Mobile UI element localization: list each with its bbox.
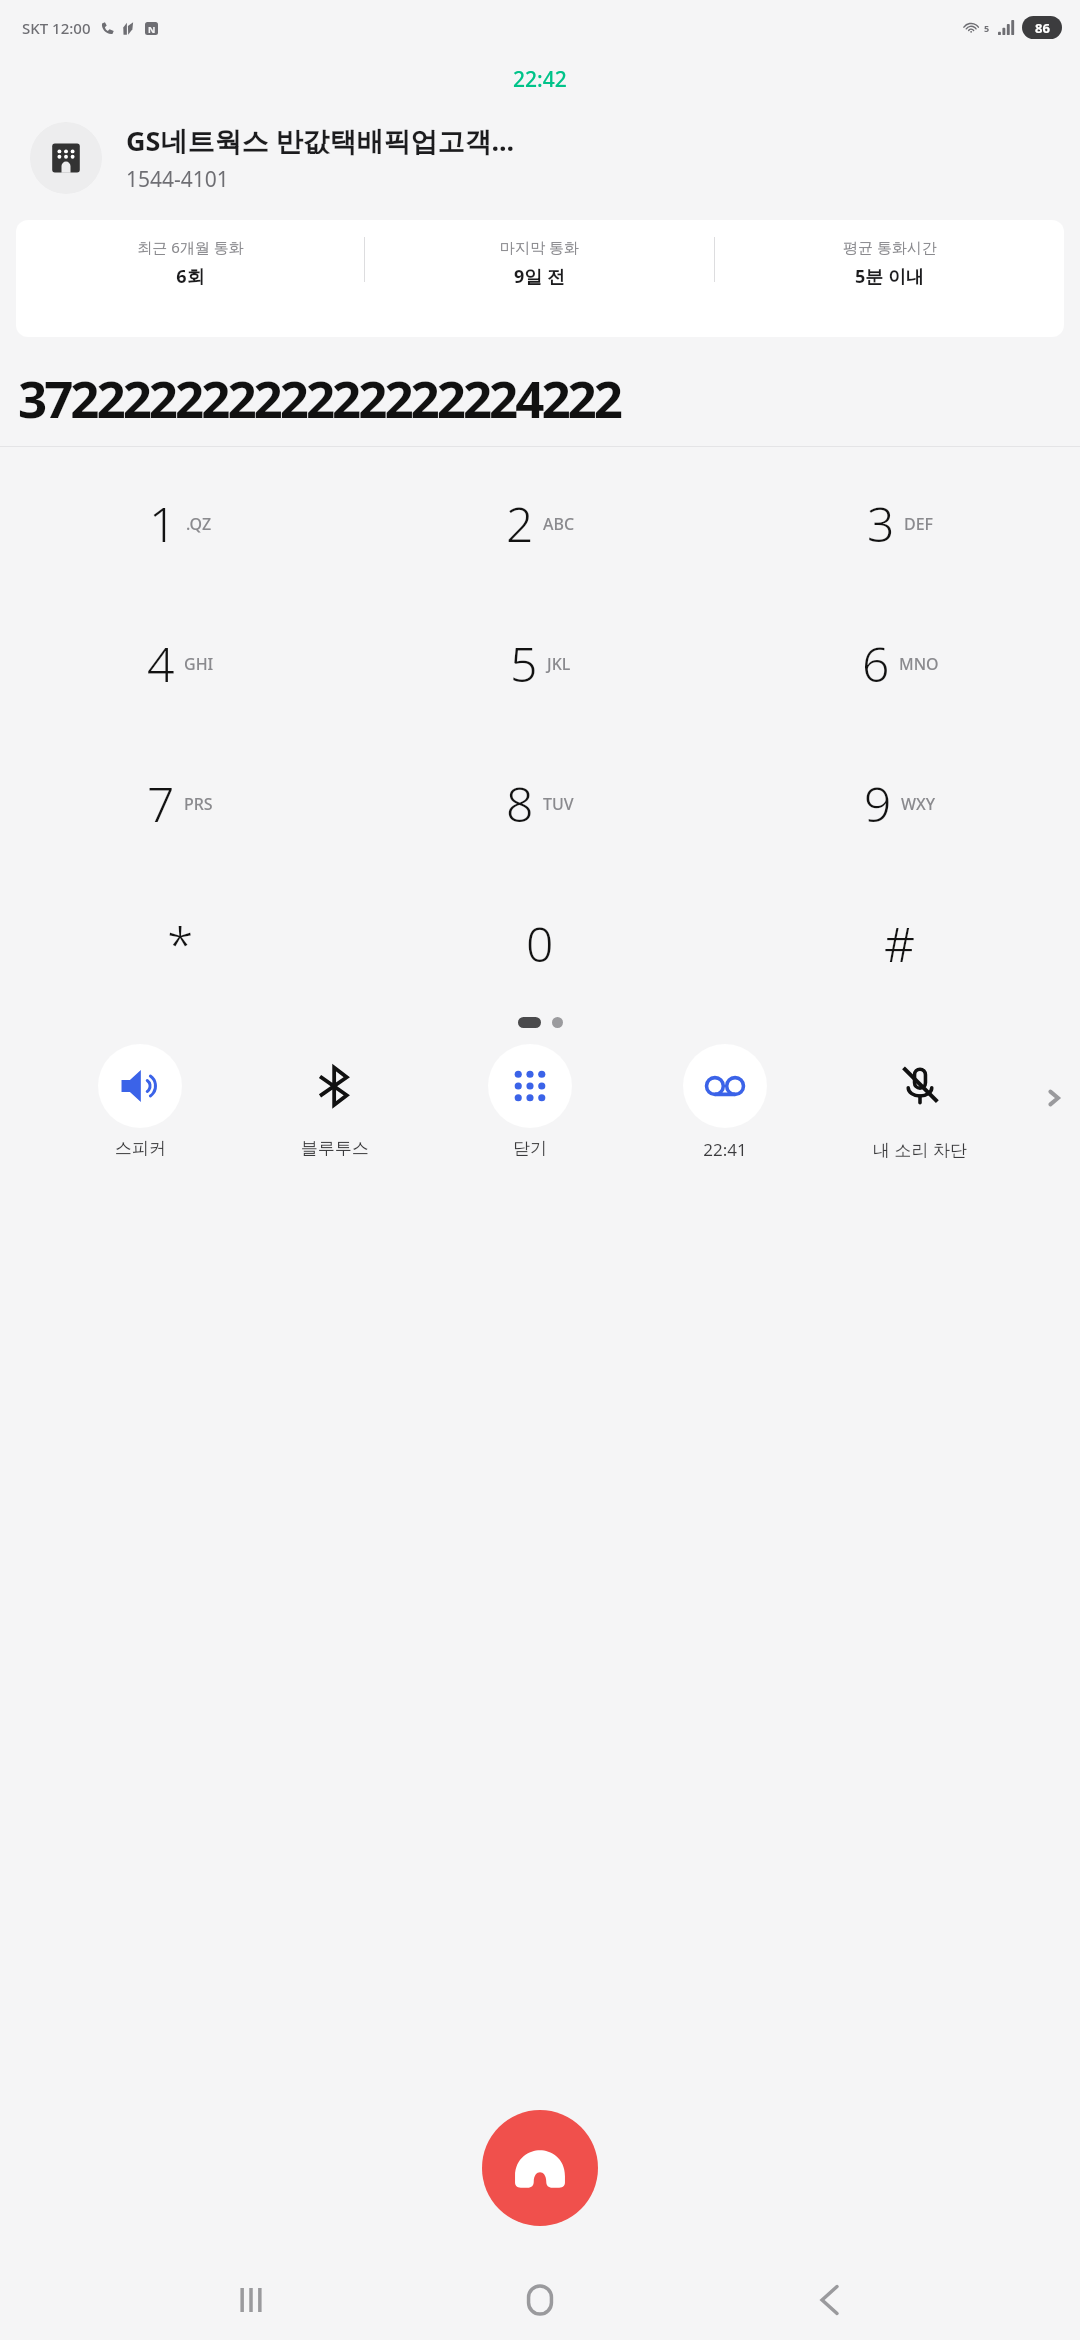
button[interactable]: 마지막 통화 [365,237,714,289]
staticText: 스피커 [115,1138,166,1159]
staticText: 2 [506,491,534,556]
staticText: DEF [904,513,934,535]
button[interactable]: Mute [855,1044,985,1161]
staticText: 3 [867,491,895,556]
other: Mute [878,1044,962,1128]
staticText: PRS [184,793,213,815]
staticText: 닫기 [513,1138,547,1159]
staticText: 내 소리 차단 [873,1138,967,1161]
button[interactable]: Voicemail [660,1044,790,1161]
staticText: 1544-4101 [126,165,229,194]
button[interactable]: More options [1034,1078,1074,1118]
button[interactable]: 4 [0,593,360,733]
staticText: 7 [147,771,175,836]
staticText: .QZ [186,513,212,535]
button[interactable]: Back [791,2261,869,2339]
staticText: 6 [862,631,890,696]
staticText: 37222222222222222224222 [18,363,620,432]
button[interactable]: 5 [360,593,720,733]
staticText: 0 [526,911,554,976]
staticText: ABC [543,513,575,535]
button[interactable]: Speaker [75,1044,205,1159]
button[interactable]: 9 [720,733,1080,873]
staticText: 마지막 통화 [500,237,579,257]
staticText: SKT 12:00 [22,18,91,38]
button[interactable]: 0 [360,873,720,1013]
other: Voicemail [683,1044,767,1128]
staticText: GHI [184,653,214,675]
button[interactable]: 1 [0,453,360,593]
staticText: 5 [510,631,538,696]
button[interactable]: 6 [720,593,1080,733]
button[interactable]: 8 [360,733,720,873]
staticText: # [884,911,916,976]
staticText: MNO [899,653,939,675]
button[interactable]: 평균 통화시간 [715,237,1064,289]
staticText: 5 [984,22,990,34]
other: Bluetooth [293,1044,377,1128]
button[interactable]: Recents [212,2261,290,2339]
staticText: * [167,911,194,976]
button[interactable]: 7 [0,733,360,873]
button[interactable]: End call [482,2110,598,2226]
staticText: 4 [147,631,175,696]
button[interactable]: 최근 6개월 통화 [16,237,364,289]
button[interactable]: * [0,873,360,1013]
button[interactable]: Bluetooth [270,1044,400,1159]
button[interactable]: # [720,873,1080,1013]
other: Close keypad [488,1044,572,1128]
staticText: 8 [506,771,534,836]
staticText: 최근 6개월 통화 [137,237,244,257]
staticText: GS네트웍스 반값택배픽업고객... [126,122,515,159]
staticText: 9일 전 [514,264,565,289]
staticText: 86 [1035,19,1050,37]
button[interactable]: Close keypad [465,1044,595,1159]
button[interactable]: 2 [360,453,720,593]
staticText: JKL [547,653,571,675]
staticText: 5분 이내 [855,264,924,289]
staticText: N [148,23,156,35]
button[interactable]: 3 [720,453,1080,593]
staticText: 평균 통화시간 [843,237,937,257]
staticText: 1 [149,491,177,556]
staticText: 22:42 [513,65,567,94]
staticText: WXY [901,793,936,815]
staticText: TUV [543,793,574,815]
other: Speaker [98,1044,182,1128]
staticText: 6회 [176,264,205,289]
button[interactable]: Home [501,2261,579,2339]
staticText: 9 [864,771,892,836]
staticText: 블루투스 [301,1138,369,1159]
staticText: 22:41 [703,1138,747,1161]
